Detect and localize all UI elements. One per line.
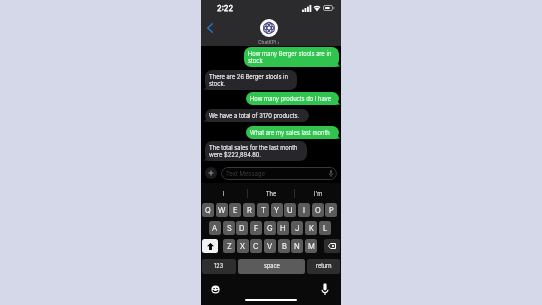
staticText: L	[323, 224, 328, 233]
button[interactable]: R	[243, 203, 255, 217]
button[interactable]: Backspace	[324, 239, 340, 253]
staticText: G	[267, 224, 273, 233]
button[interactable]: M	[305, 239, 317, 253]
button[interactable]: L	[319, 221, 331, 235]
button[interactable]: H	[277, 221, 289, 235]
staticText: We have a total of 3170 products.	[209, 112, 300, 119]
button[interactable]: G	[264, 221, 276, 235]
staticText: 2:22	[217, 4, 234, 13]
button[interactable]: V	[264, 239, 276, 253]
button[interactable]: J	[291, 221, 303, 235]
staticText: Q	[205, 206, 211, 215]
button[interactable]: O	[312, 203, 324, 217]
button[interactable]: How many products do I have	[246, 92, 339, 105]
staticText: How many Berger stools are in stock	[248, 50, 335, 64]
staticText: K	[309, 224, 314, 233]
button[interactable]: C	[250, 239, 262, 253]
staticText: C	[253, 242, 259, 251]
staticText: T	[261, 206, 266, 215]
staticText: D	[239, 224, 245, 233]
button[interactable]: We have a total of 3170 products.	[205, 109, 309, 122]
staticText: I	[223, 190, 225, 197]
button[interactable]: E	[229, 203, 241, 217]
staticText: H	[280, 224, 286, 233]
button[interactable]: How many Berger stools are in stock	[244, 47, 339, 67]
staticText: E	[233, 206, 238, 215]
staticText: There are 26 Berger stools in stock.	[209, 73, 293, 87]
button[interactable]: P	[325, 203, 337, 217]
button[interactable]: W	[216, 203, 228, 217]
staticText: I'm	[314, 190, 323, 197]
staticText: S	[227, 224, 232, 233]
staticText: I	[303, 206, 305, 215]
button[interactable]: What are my sales last month	[246, 126, 339, 139]
staticText: P	[329, 206, 334, 215]
staticText: 123	[214, 263, 224, 270]
button[interactable]: Y	[271, 203, 283, 217]
button[interactable]: U	[284, 203, 296, 217]
staticText: X	[240, 242, 246, 251]
staticText: A	[212, 224, 218, 233]
staticText: J	[295, 224, 300, 233]
button[interactable]: Add attachment	[205, 167, 217, 179]
staticText: U	[287, 206, 293, 215]
button[interactable]: F	[250, 221, 262, 235]
button[interactable]: space	[238, 259, 305, 274]
staticText: W	[218, 206, 226, 215]
staticText: space	[264, 263, 280, 270]
button[interactable]: S	[223, 221, 235, 235]
button[interactable]: Z	[223, 239, 235, 253]
button[interactable]: D	[236, 221, 248, 235]
button[interactable]: 123	[202, 259, 236, 274]
button[interactable]: Shift	[202, 239, 218, 253]
staticText: The	[266, 190, 277, 197]
button[interactable]: T	[257, 203, 269, 217]
staticText: return	[316, 263, 332, 270]
staticText: Z	[227, 242, 232, 251]
button[interactable]: return	[307, 259, 340, 274]
button[interactable]: ChatKPI ›	[258, 19, 280, 45]
button[interactable]: Dictation	[320, 282, 330, 296]
staticText: M	[308, 242, 315, 251]
staticText: R	[247, 206, 252, 215]
button[interactable]: X	[237, 239, 249, 253]
button[interactable]: K	[305, 221, 317, 235]
button[interactable]: Emoji keyboard	[210, 284, 220, 294]
button[interactable]: I	[201, 183, 247, 202]
button[interactable]: A	[209, 221, 221, 235]
button[interactable]: Back	[202, 19, 217, 37]
staticText: ChatKPI ›	[258, 39, 280, 45]
staticText: F	[254, 224, 259, 233]
button[interactable]: Text Message	[221, 167, 337, 180]
staticText: Text Message	[226, 170, 265, 177]
staticText: What are my sales last month	[250, 129, 330, 136]
button[interactable]: The	[248, 183, 294, 202]
button[interactable]: N	[291, 239, 303, 253]
button[interactable]: The total sales for the last month were …	[205, 141, 307, 161]
staticText: B	[282, 242, 287, 251]
staticText: The total sales for the last month were …	[209, 144, 303, 158]
staticText: V	[267, 242, 273, 251]
button[interactable]: There are 26 Berger stools in stock.	[205, 70, 297, 90]
button[interactable]: I'm	[295, 183, 341, 202]
button[interactable]: B	[278, 239, 290, 253]
button[interactable]: Q	[202, 203, 214, 217]
staticText: Y	[274, 206, 280, 215]
staticText: N	[294, 242, 300, 251]
button[interactable]: I	[298, 203, 310, 217]
staticText: How many products do I have	[250, 95, 332, 102]
staticText: O	[315, 206, 321, 215]
